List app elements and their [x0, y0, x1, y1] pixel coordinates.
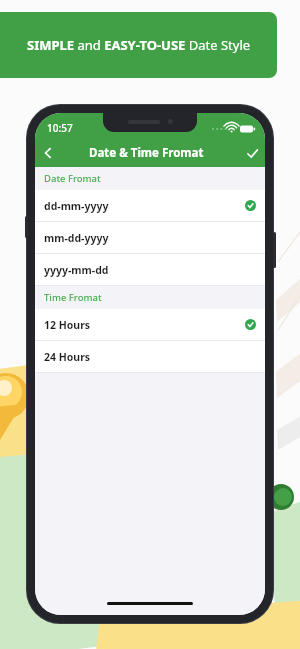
button[interactable]: yyyy-mm-dd [35, 254, 265, 285]
button[interactable]: SIMPLE and EASY-TO-USE Date Style [0, 12, 277, 78]
button[interactable]: 24 Hours [35, 341, 265, 372]
button[interactable]: Back [35, 140, 61, 166]
button[interactable]: 12 Hours [35, 309, 265, 340]
staticText: Time Fromat [44, 291, 102, 304]
button[interactable]: mm-dd-yyyy [35, 222, 265, 253]
staticText: dd-mm-yyyy [44, 199, 109, 213]
staticText: 12 Hours [44, 318, 91, 332]
staticText: mm-dd-yyyy [44, 231, 109, 245]
staticText: 10:57 [47, 121, 73, 135]
staticText: Date Fromat [44, 172, 101, 185]
button[interactable]: dd-mm-yyyy [35, 190, 265, 221]
staticText: yyyy-mm-dd [44, 263, 109, 277]
staticText: 24 Hours [44, 350, 91, 364]
staticText: SIMPLE and EASY-TO-USE Date Style [27, 36, 251, 54]
button[interactable]: Confirm [239, 140, 265, 166]
staticText: Date & Time Fromat [89, 145, 204, 161]
